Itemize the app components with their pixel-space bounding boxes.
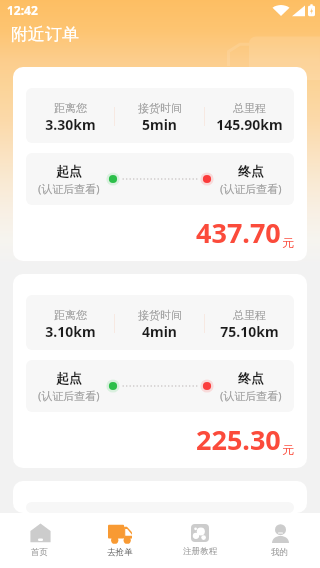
staticText: (认证后查看) bbox=[220, 181, 282, 196]
staticText: 总里程 bbox=[233, 101, 266, 115]
button[interactable]: 首页 bbox=[0, 513, 80, 568]
staticText: 起点 bbox=[56, 370, 82, 386]
staticText: (认证后查看) bbox=[38, 388, 100, 403]
staticText: 接货时间 bbox=[138, 101, 182, 115]
staticText: 75.10km bbox=[220, 322, 279, 341]
staticText: 附近订单 bbox=[11, 24, 79, 45]
staticText: (认证后查看) bbox=[220, 388, 282, 403]
staticText: 12:42 bbox=[7, 2, 38, 18]
staticText: 终点 bbox=[238, 370, 264, 386]
staticText: 注册教程 bbox=[183, 546, 218, 557]
button[interactable]: 距离您 bbox=[13, 67, 307, 261]
staticText: 接货时间 bbox=[138, 308, 182, 322]
staticText: 距离您 bbox=[54, 101, 87, 115]
staticText: 3.30km bbox=[45, 115, 96, 134]
staticText: 元 bbox=[282, 235, 294, 250]
staticText: 首页 bbox=[31, 547, 49, 558]
staticText: 去抢单 bbox=[107, 547, 133, 558]
staticText: 225.30 bbox=[196, 421, 281, 458]
button[interactable]: 注册教程 bbox=[160, 513, 240, 568]
staticText: 437.70 bbox=[196, 214, 281, 251]
button[interactable]: 我的 bbox=[240, 513, 320, 568]
staticText: 145.90km bbox=[216, 115, 283, 134]
button[interactable]: 距离您 bbox=[13, 274, 307, 468]
staticText: 3.10km bbox=[45, 322, 96, 341]
staticText: 我的 bbox=[271, 547, 289, 558]
button[interactable]: 距离您 bbox=[13, 481, 307, 513]
staticText: (认证后查看) bbox=[38, 181, 100, 196]
staticText: 起点 bbox=[56, 163, 82, 179]
staticText: 终点 bbox=[238, 163, 264, 179]
staticText: 总里程 bbox=[233, 308, 266, 322]
staticText: 距离您 bbox=[54, 308, 87, 322]
staticText: 元 bbox=[282, 442, 294, 457]
staticText: 5min bbox=[142, 115, 177, 134]
button[interactable]: 去抢单 bbox=[80, 513, 160, 568]
staticText: 4min bbox=[142, 322, 177, 341]
